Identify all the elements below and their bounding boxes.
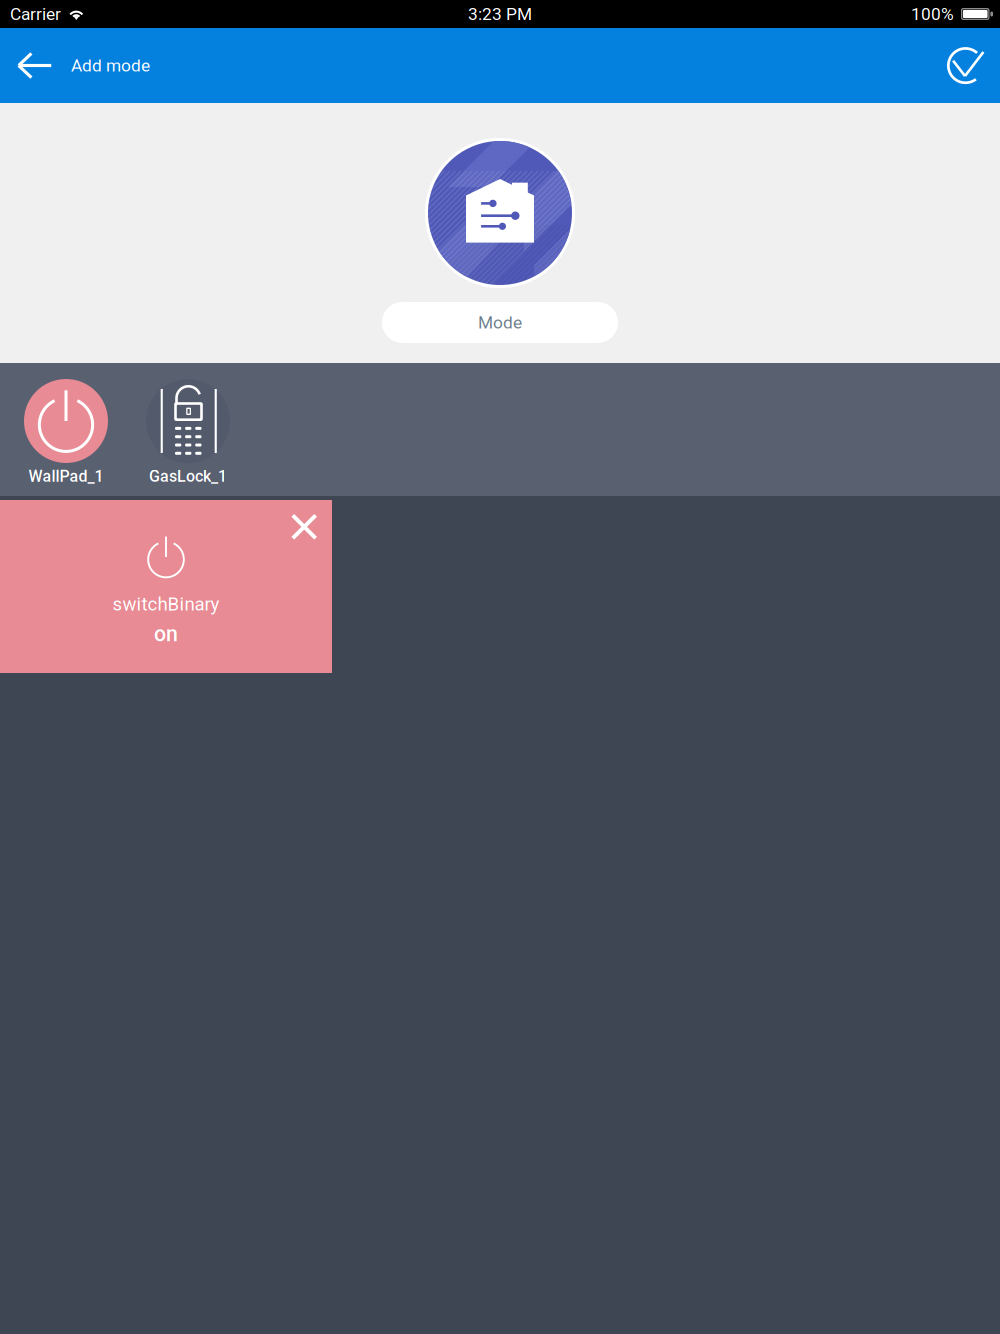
button[interactable]: Save (932, 30, 1000, 101)
staticText: 3:23 PM (468, 4, 532, 24)
button[interactable]: Back (0, 28, 70, 103)
staticText: Mode (478, 312, 522, 333)
staticText: Carrier (10, 4, 61, 24)
button[interactable]: Add mode (0, 30, 170, 101)
staticText: WallPad_1 (28, 467, 103, 486)
staticText: on (154, 621, 178, 646)
staticText: switchBinary (112, 593, 219, 615)
staticText: GasLock_1 (149, 467, 227, 486)
button[interactable]: GasLock_1 (127, 379, 249, 486)
staticText: 100% (911, 4, 954, 24)
staticText: Add mode (71, 55, 150, 76)
button[interactable]: WallPad_1 (5, 379, 127, 486)
button[interactable]: Remove action (277, 499, 332, 554)
button[interactable]: Mode (382, 302, 618, 343)
button[interactable]: Mode icon (425, 138, 575, 288)
